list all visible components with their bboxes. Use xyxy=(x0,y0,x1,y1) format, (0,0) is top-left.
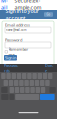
staticText: Go xyxy=(46,13,50,16)
button[interactable]: Sign in xyxy=(4,55,17,60)
staticText: secure.example.com xyxy=(14,0,41,11)
staticText: Sign in to your account xyxy=(5,7,38,22)
staticText: Sign in xyxy=(5,55,16,60)
button[interactable]: Mail xyxy=(1,1,9,6)
staticText: Email address xyxy=(5,22,30,28)
button[interactable]: Done xyxy=(45,66,53,70)
staticText: name@mail.com xyxy=(6,28,26,32)
button[interactable]: Go xyxy=(44,12,53,17)
staticText: Remember me xyxy=(9,46,29,57)
staticText: Password xyxy=(5,37,22,43)
staticText: Passwords xyxy=(4,63,18,73)
button[interactable]: Passwords xyxy=(4,66,18,70)
staticText: Done xyxy=(45,63,53,73)
staticText: Mail xyxy=(1,0,8,11)
